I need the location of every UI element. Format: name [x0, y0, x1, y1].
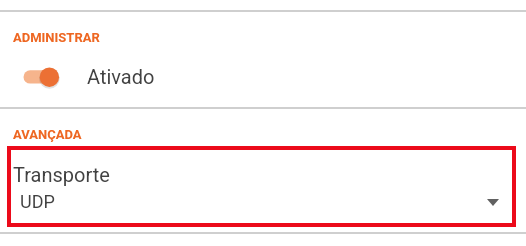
button[interactable]: Ativado toggle	[18, 62, 64, 92]
button[interactable]: Transporte	[7, 146, 516, 227]
staticText: ADMINISTRAR	[13, 30, 100, 45]
staticText: Ativado	[87, 65, 155, 88]
button[interactable]: Ativado toggle	[0, 50, 526, 104]
staticText: AVANÇADA	[13, 127, 82, 142]
other: Expand transport options	[487, 199, 499, 206]
staticText: UDP	[20, 191, 55, 212]
staticText: Transporte	[13, 163, 110, 186]
